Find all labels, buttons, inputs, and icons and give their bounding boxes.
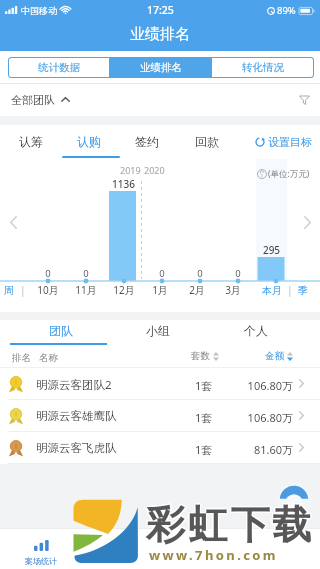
button[interactable]: 季 (298, 284, 308, 297)
staticText: 106.80万 (240, 410, 293, 425)
staticText: 业绩排名 (130, 25, 190, 44)
staticText: 明源云客飞虎队 (36, 441, 117, 455)
staticText: 回款 (195, 134, 219, 149)
staticText: www.7hon.com (149, 546, 278, 564)
staticText: 89% (277, 4, 296, 17)
staticText: 彩虹下载 (146, 499, 315, 548)
button[interactable]: 签约 (118, 125, 176, 159)
button[interactable]: 团队 (12, 320, 109, 345)
staticText: 认购 (77, 134, 101, 149)
staticText: 彩虹下载 (147, 501, 316, 550)
staticText: 认筹 (19, 134, 43, 149)
staticText: 明源云客团队2 (36, 377, 112, 393)
staticText: 周 (4, 284, 14, 297)
staticText: 11月 (71, 283, 101, 297)
staticText: 彩虹下载 (147, 500, 316, 549)
staticText: 转化情况 (242, 61, 284, 74)
button[interactable]: 套数 (191, 350, 219, 362)
staticText: www.7hon.com (148, 547, 277, 565)
button[interactable]: Next period (298, 213, 316, 231)
staticText: 295 (258, 243, 285, 257)
staticText: www.7hon.com (150, 546, 279, 564)
staticText: www.7hon.com (150, 547, 279, 565)
button[interactable]: 回款 (176, 125, 238, 159)
staticText: 签约 (135, 134, 159, 149)
staticText: 106.80万 (240, 378, 293, 393)
staticText: 金额 (265, 350, 284, 362)
staticText: 1套 (195, 378, 213, 393)
staticText: 全部团队 (11, 93, 55, 107)
staticText: 名称 (39, 352, 58, 364)
button[interactable]: Previous period (4, 213, 22, 231)
staticText: 彩虹下载 (145, 501, 314, 550)
staticText: 10月 (33, 283, 63, 297)
staticText: 彩虹下载 (145, 500, 314, 549)
staticText: 业绩排名 (140, 61, 182, 74)
button[interactable]: 案场统计 (15, 528, 67, 569)
button[interactable]: 明源云客雄鹰队 (0, 400, 320, 432)
button[interactable]: 本月 (262, 284, 282, 297)
staticText: 3月 (218, 283, 248, 297)
button[interactable]: 统计数据 (9, 58, 109, 77)
staticText: www.7hon.com (149, 547, 278, 565)
staticText: 统计数据 (38, 61, 80, 74)
button[interactable]: 认购 (60, 125, 118, 159)
staticText: 团队 (49, 323, 73, 338)
staticText: 1套 (195, 442, 213, 457)
staticText: 案场统计 (25, 556, 57, 566)
staticText: www.7hon.com (150, 545, 279, 563)
button[interactable]: 全部团队 (11, 83, 70, 116)
button[interactable]: 业绩排名 (110, 58, 211, 77)
staticText: 0 (190, 267, 210, 280)
staticText: 2月 (182, 283, 212, 297)
staticText: www.7hon.com (148, 545, 277, 563)
staticText: 中国移动 (21, 5, 57, 16)
staticText: 0 (38, 267, 58, 280)
staticText: 1套 (195, 410, 213, 425)
button[interactable]: 设置目标 (255, 125, 312, 159)
staticText: 彩虹下载 (146, 500, 315, 549)
button[interactable]: 个人 (207, 320, 305, 345)
staticText: 季 (298, 284, 308, 297)
button[interactable]: 周 (4, 283, 26, 297)
staticText: 彩虹下载 (145, 499, 314, 548)
staticText: 2020 (144, 164, 165, 176)
staticText: 81.60万 (240, 442, 293, 457)
staticText: 彩虹下载 (147, 499, 316, 548)
staticText: 0 (76, 267, 96, 280)
staticText: 1月 (145, 283, 175, 297)
staticText: 1136 (110, 177, 137, 191)
staticText: www.7hon.com (148, 546, 277, 564)
staticText: | (287, 283, 293, 297)
staticText: 0 (152, 267, 172, 280)
staticText: www.7hon.com (149, 545, 278, 563)
button[interactable]: 金额 (265, 350, 293, 362)
staticText: 0 (228, 267, 248, 280)
button[interactable]: 转化情况 (212, 58, 313, 77)
staticText: 2019 (120, 164, 141, 176)
staticText: 17:25 (147, 3, 174, 17)
staticText: 排名 (12, 352, 31, 364)
button[interactable]: Filter (288, 83, 320, 116)
staticText: 明源云客雄鹰队 (36, 409, 117, 423)
staticText: 彩虹下载 (146, 501, 315, 550)
button[interactable]: 明源云客飞虎队 (0, 432, 320, 464)
staticText: 个人 (244, 323, 268, 338)
staticText: 本月 (262, 284, 282, 297)
staticText: 套数 (191, 350, 210, 362)
button[interactable]: 明源云客团队2 (0, 368, 320, 400)
staticText: | (20, 283, 26, 297)
button[interactable]: 认筹 (2, 125, 60, 159)
button[interactable]: 小组 (109, 320, 207, 345)
staticText: 小组 (146, 323, 170, 338)
staticText: 12月 (109, 283, 139, 297)
staticText: (单位:万元) (268, 168, 310, 180)
staticText: 设置目标 (268, 135, 312, 149)
